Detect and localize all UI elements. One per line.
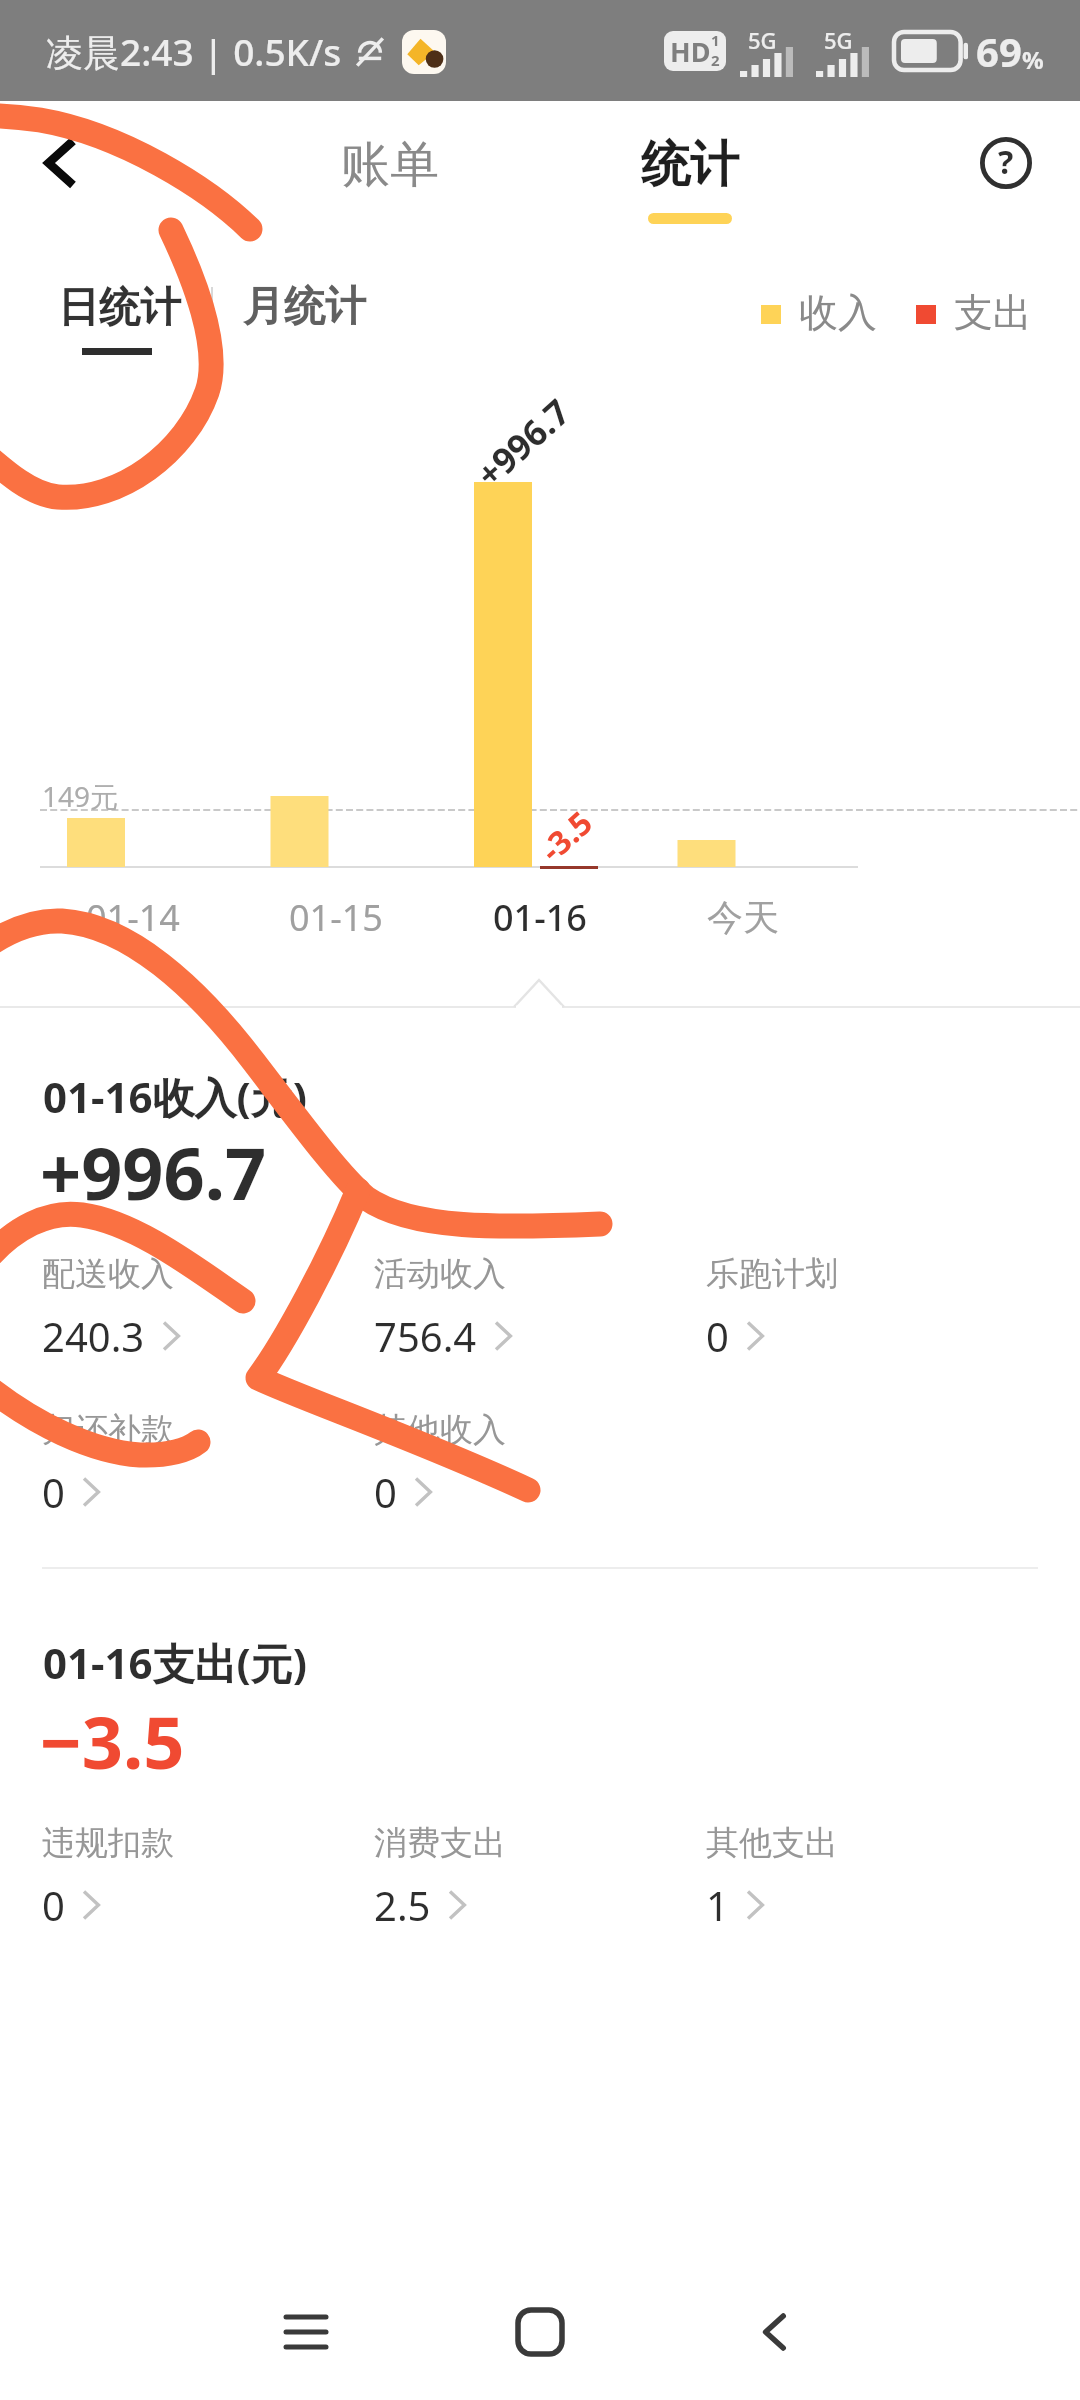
button[interactable]: 违规扣款 xyxy=(42,1822,342,1932)
button[interactable]: 日统计 xyxy=(40,272,200,362)
staticText: 统计 xyxy=(641,134,739,196)
staticText: 01-14 xyxy=(86,893,180,942)
staticText: HD xyxy=(670,33,711,70)
staticText: % xyxy=(1022,43,1044,76)
staticText: 2.5 xyxy=(374,1878,431,1932)
button[interactable]: 账单 xyxy=(310,124,470,206)
staticText: 5G xyxy=(748,25,777,55)
button[interactable]: 活动收入 xyxy=(374,1253,674,1363)
button[interactable]: 01-15 xyxy=(246,886,426,948)
button[interactable]: 配送收入 xyxy=(42,1253,342,1363)
button[interactable]: 消费支出 xyxy=(374,1822,674,1932)
button[interactable]: 统计 xyxy=(610,124,770,206)
staticText: 0 xyxy=(42,1878,65,1932)
staticText: 0 xyxy=(374,1465,397,1519)
staticText: 支出 xyxy=(954,288,1032,337)
staticText: 01-15 xyxy=(289,893,383,942)
staticText: 归还补款 xyxy=(42,1409,174,1451)
staticText: 01-16收入(元) xyxy=(43,1068,308,1125)
button[interactable]: 01-16 xyxy=(450,886,630,948)
button[interactable]: 其他支出 xyxy=(706,1822,1006,1932)
button[interactable]: Recents xyxy=(256,2282,356,2382)
staticText: 69 xyxy=(976,24,1022,78)
button[interactable]: 01-14 xyxy=(43,886,223,948)
staticText: 其他支出 xyxy=(706,1822,838,1864)
staticText: 149元 xyxy=(42,777,119,815)
staticText: 01-16 xyxy=(493,893,587,942)
staticText: 240.3 xyxy=(42,1309,145,1363)
staticText: 违规扣款 xyxy=(42,1822,174,1864)
staticText: 01-16支出(元) xyxy=(43,1634,308,1691)
staticText: 1 xyxy=(706,1878,729,1932)
staticText: 收入 xyxy=(799,288,877,337)
staticText: 0 xyxy=(42,1465,65,1519)
staticText: 消费支出 xyxy=(374,1822,506,1864)
staticText: 账单 xyxy=(341,134,439,196)
button[interactable]: Home xyxy=(490,2282,590,2382)
button[interactable]: 其他收入 xyxy=(374,1409,674,1519)
staticText: 其他收入 xyxy=(374,1409,506,1451)
staticText: 1 xyxy=(711,31,720,50)
staticText: 756.4 xyxy=(374,1309,477,1363)
button[interactable]: 月统计 xyxy=(228,281,380,341)
staticText: 今天 xyxy=(707,895,779,940)
button[interactable]: 归还补款 xyxy=(42,1409,342,1519)
staticText: +996.7 xyxy=(40,1123,267,1221)
staticText: 活动收入 xyxy=(374,1253,506,1295)
staticText: ? xyxy=(998,140,1014,184)
staticText: -3.5 xyxy=(530,801,602,871)
button[interactable]: Help xyxy=(976,133,1036,193)
staticText: −3.5 xyxy=(40,1692,185,1790)
staticText: +996.7 xyxy=(466,388,580,498)
staticText: 日统计 xyxy=(58,282,181,334)
staticText: 月统计 xyxy=(243,281,366,333)
button[interactable]: 乐跑计划 xyxy=(706,1253,1006,1363)
button[interactable]: 今天 xyxy=(653,886,833,948)
button[interactable]: Back xyxy=(8,113,108,213)
staticText: 5G xyxy=(824,25,853,55)
staticText: 配送收入 xyxy=(42,1253,174,1295)
button[interactable]: Back xyxy=(724,2282,824,2382)
staticText: 凌晨2:43 | 0.5K/s xyxy=(46,26,342,77)
staticText: 乐跑计划 xyxy=(706,1253,838,1295)
staticText: 2 xyxy=(711,50,720,70)
staticText: 0 xyxy=(706,1309,729,1363)
